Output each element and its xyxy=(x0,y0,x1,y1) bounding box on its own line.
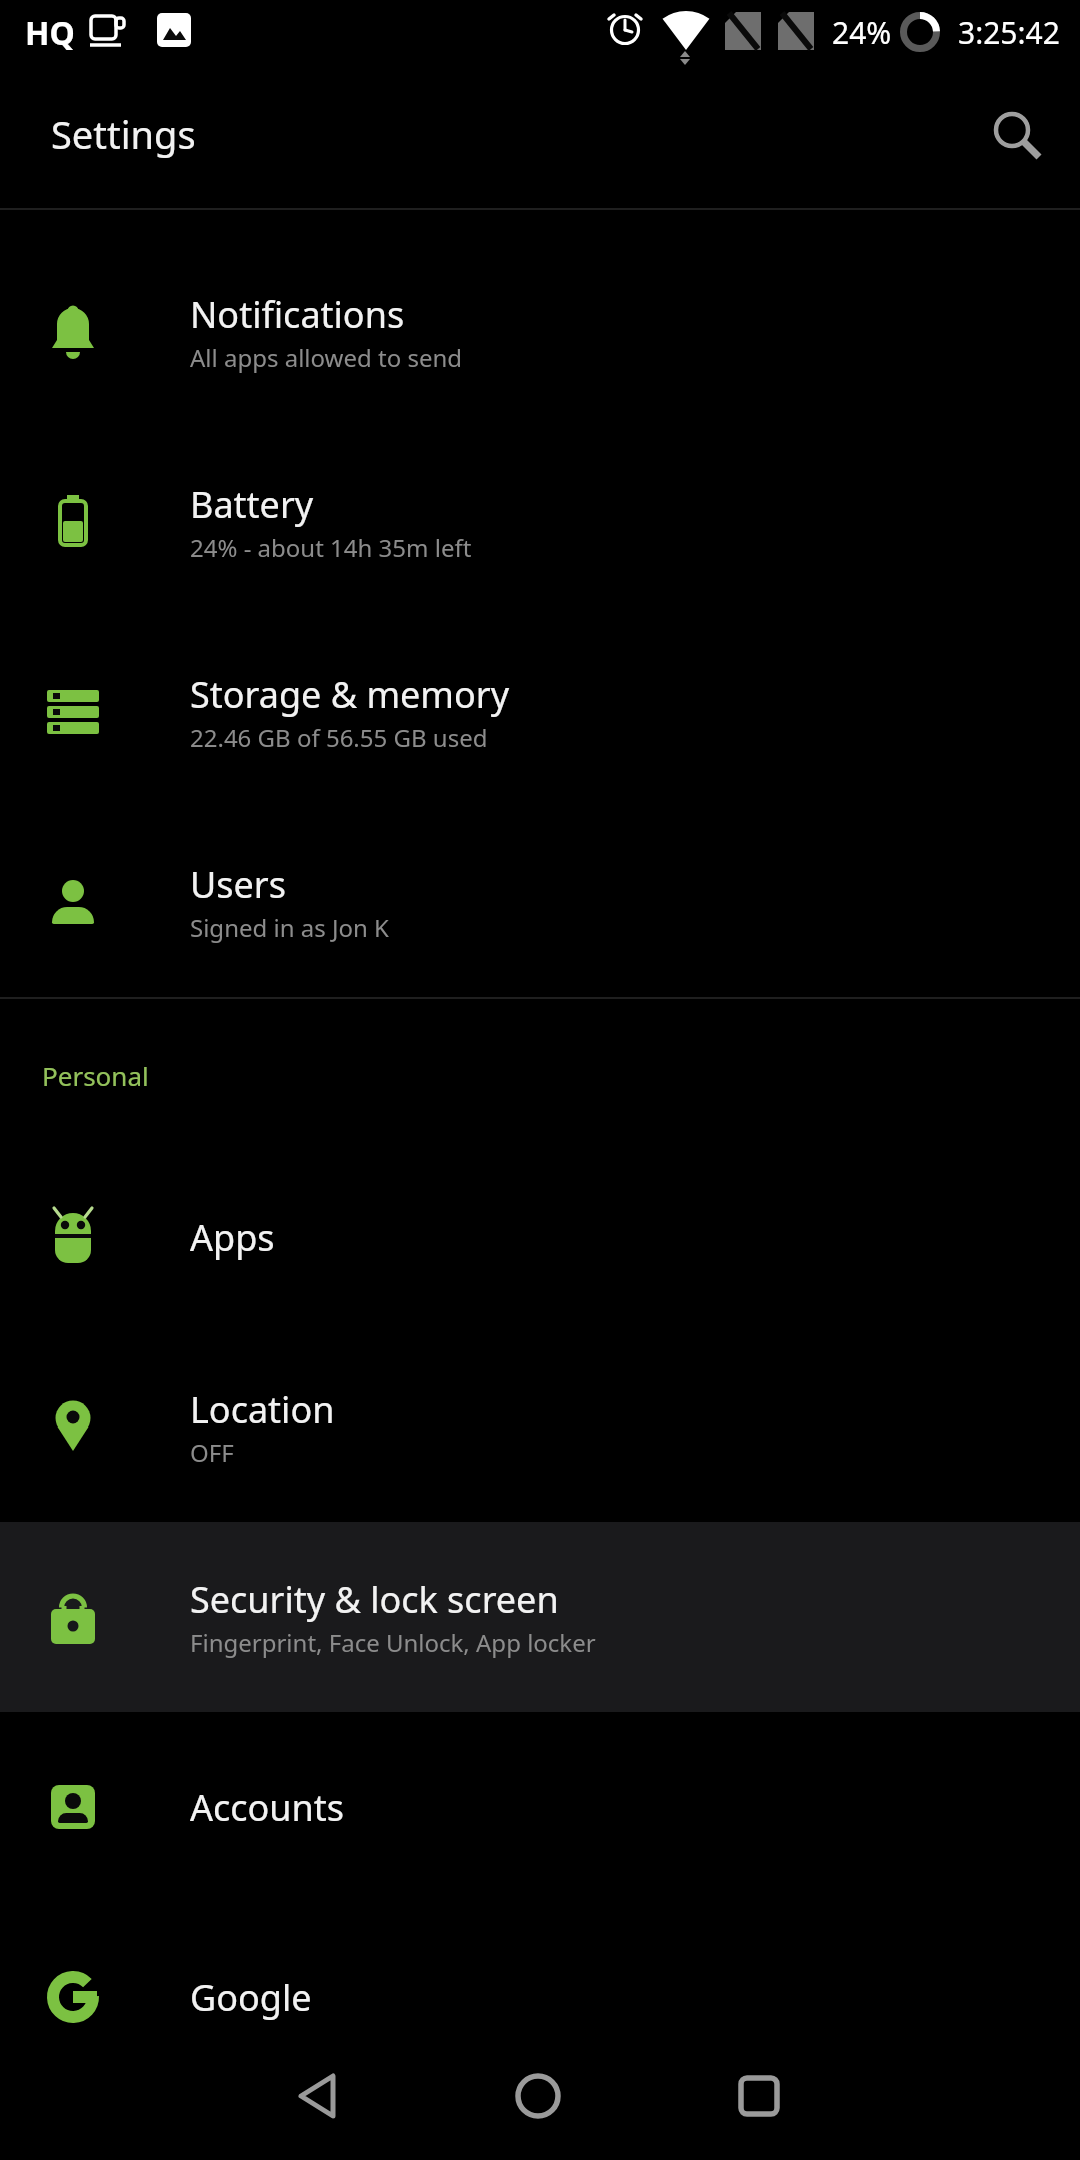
button[interactable]: Users xyxy=(0,807,1080,997)
staticText: 22.46 GB of 56.55 GB used xyxy=(190,721,488,754)
staticText: All apps allowed to send xyxy=(190,341,463,374)
staticText: OFF xyxy=(190,1436,234,1469)
button[interactable]: Accounts xyxy=(0,1712,1080,1902)
staticText: Google xyxy=(190,1973,312,2022)
staticText: Location xyxy=(190,1385,335,1434)
staticText: Storage & memory xyxy=(190,670,510,719)
staticText: Battery xyxy=(190,480,314,529)
staticText: Signed in as Jon K xyxy=(190,911,389,944)
button[interactable]: Google xyxy=(0,1902,1080,2092)
staticText: Personal xyxy=(42,1058,149,1093)
staticText: Notifications xyxy=(190,290,405,339)
staticText: Apps xyxy=(190,1213,275,1262)
button[interactable] xyxy=(988,106,1044,162)
button[interactable] xyxy=(697,2032,825,2160)
button[interactable]: Location xyxy=(0,1332,1080,1522)
button[interactable]: Storage & memory xyxy=(0,617,1080,807)
staticText: HQ xyxy=(25,11,75,55)
button[interactable]: Apps xyxy=(0,1142,1080,1332)
button[interactable]: Notifications xyxy=(0,237,1080,427)
staticText: Users xyxy=(190,860,286,909)
staticText: Fingerprint, Face Unlock, App locker xyxy=(190,1626,596,1659)
staticText: Settings xyxy=(51,108,196,160)
button[interactable] xyxy=(474,2032,602,2160)
button[interactable]: Battery xyxy=(0,427,1080,617)
staticText: Accounts xyxy=(190,1783,345,1832)
button[interactable]: Security & lock screen xyxy=(0,1522,1080,1712)
staticText: Security & lock screen xyxy=(190,1575,559,1624)
button[interactable] xyxy=(256,2032,384,2160)
staticText: 24% - about 14h 35m left xyxy=(190,531,472,564)
staticText: 3:25:42 xyxy=(958,12,1060,53)
staticText: 24% xyxy=(832,12,892,53)
